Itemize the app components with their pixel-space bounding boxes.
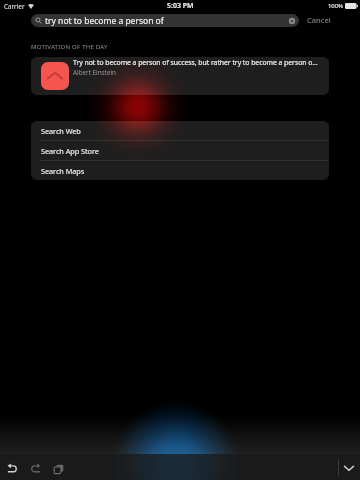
staticText: Cancel [307, 15, 331, 25]
staticText: Carrier [4, 2, 25, 11]
button[interactable]: try not to become a person of [31, 14, 299, 27]
staticText: Search App Store [41, 146, 99, 156]
staticText: 100% [328, 2, 343, 10]
staticText: MOTIVATION OF THE DAY [31, 43, 108, 51]
button[interactable]: Hide keyboard [338, 457, 360, 479]
button[interactable]: Paste [47, 457, 70, 480]
button[interactable]: Redo [24, 457, 47, 480]
button[interactable]: Try not to become a person of success, b… [31, 57, 329, 95]
button[interactable]: Clear text [287, 16, 296, 25]
staticText: Search Web [41, 126, 81, 136]
button[interactable]: Search Web [31, 121, 329, 140]
staticText: Try not to become a person of success, b… [73, 58, 318, 67]
staticText: try not to become a person of [45, 15, 287, 27]
button[interactable]: Search App Store [31, 141, 329, 160]
button[interactable]: Search Maps [31, 161, 329, 180]
button[interactable]: Cancel [299, 12, 331, 28]
button[interactable]: Undo [1, 457, 24, 480]
staticText: Albert Einstein [73, 68, 116, 77]
staticText: 5:03 PM [167, 1, 194, 11]
staticText: Search Maps [41, 166, 85, 176]
